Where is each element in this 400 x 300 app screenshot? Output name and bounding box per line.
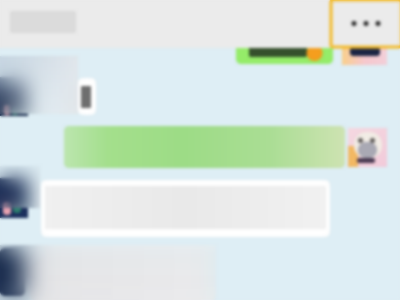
button[interactable]: More — [331, 0, 400, 47]
